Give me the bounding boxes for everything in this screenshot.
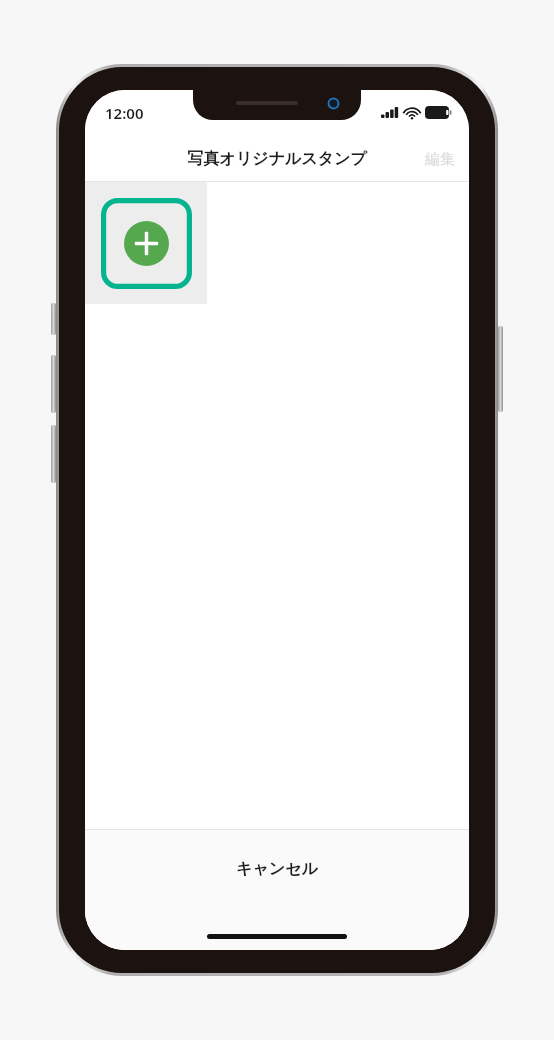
button[interactable]: 編集: [411, 140, 469, 179]
button[interactable]: キャンセル: [85, 830, 469, 950]
staticText: キャンセル: [236, 859, 318, 879]
staticText: 編集: [425, 150, 455, 169]
staticText: 12:00: [105, 103, 144, 123]
button[interactable]: スタンプを追加: [85, 182, 207, 304]
staticText: 写真オリジナルスタンプ: [187, 149, 367, 169]
